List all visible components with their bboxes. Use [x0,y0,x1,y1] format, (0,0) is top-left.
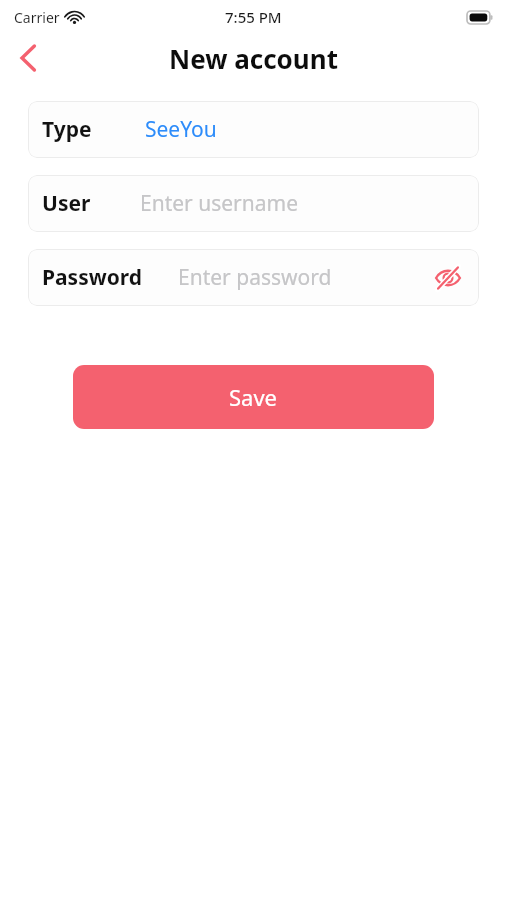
staticText: Save [229,382,278,412]
staticText: Enter password [178,263,332,292]
button[interactable]: Show password [431,261,465,295]
button[interactable]: Password [28,249,479,306]
staticText: 7:55 PM [225,7,282,27]
staticText: Enter username [140,189,299,218]
staticText: New account [169,41,338,76]
button[interactable]: Save [73,365,434,429]
button[interactable]: Back [4,34,52,82]
staticText: User [42,189,91,218]
staticText: Carrier [14,8,60,27]
staticText: Type [42,115,92,144]
button[interactable]: User [28,175,479,232]
button[interactable]: Type [28,101,479,158]
staticText: SeeYou [145,115,217,144]
staticText: Password [42,263,143,292]
